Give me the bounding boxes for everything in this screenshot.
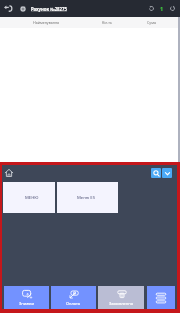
button[interactable]: Menu [147, 286, 175, 309]
staticText: Замовлення [109, 301, 134, 306]
staticText: Меню ES [77, 195, 95, 201]
button[interactable]: Back [0, 1, 15, 16]
button[interactable]: Search [151, 168, 161, 178]
button[interactable]: Discounts [4, 286, 49, 309]
button[interactable]: Undo [146, 3, 157, 14]
staticText: 1 [160, 5, 164, 12]
staticText: Сума [147, 20, 156, 25]
button[interactable]: Payment [51, 286, 96, 309]
button[interactable]: Orders [98, 286, 144, 309]
staticText: Найменування [33, 20, 60, 25]
staticText: Оплата [66, 301, 81, 306]
button[interactable]: МЕНЮ [3, 182, 55, 213]
button[interactable]: Expand [162, 168, 172, 178]
button[interactable]: Home [2, 166, 16, 180]
staticText: Рахунок №28275 [31, 6, 67, 12]
staticText: МЕНЮ [25, 195, 39, 201]
button[interactable]: Redo [167, 3, 178, 14]
button[interactable]: Меню ES [57, 182, 118, 213]
staticText: Знижки [19, 301, 34, 306]
staticText: Кіл-ть [102, 20, 112, 25]
